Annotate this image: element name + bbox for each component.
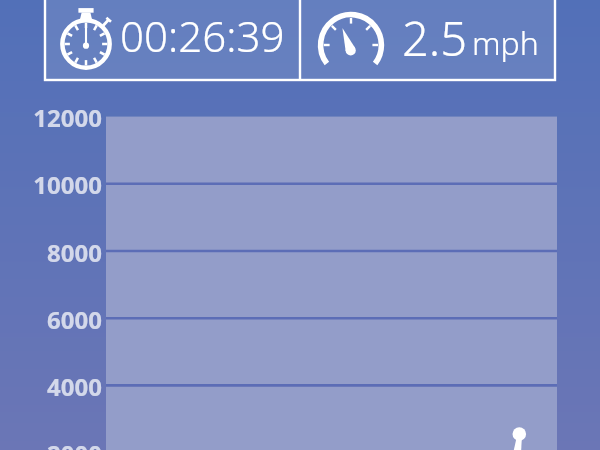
staticText: mph [472, 21, 539, 65]
staticText: 00:26:39 [120, 7, 285, 64]
staticText: 10000 [0, 168, 102, 201]
other: Current speed [317, 11, 385, 79]
staticText: 6000 [0, 303, 102, 336]
staticText: 2000 [0, 437, 102, 450]
staticText: 2.5 [402, 6, 468, 70]
other: Elapsed time [52, 10, 120, 78]
staticText: 4000 [0, 370, 102, 403]
button[interactable]: Elapsed time [46, 0, 299, 79]
button[interactable]: Current speed [301, 0, 554, 79]
staticText: 8000 [0, 236, 102, 269]
staticText: 12000 [0, 101, 102, 134]
